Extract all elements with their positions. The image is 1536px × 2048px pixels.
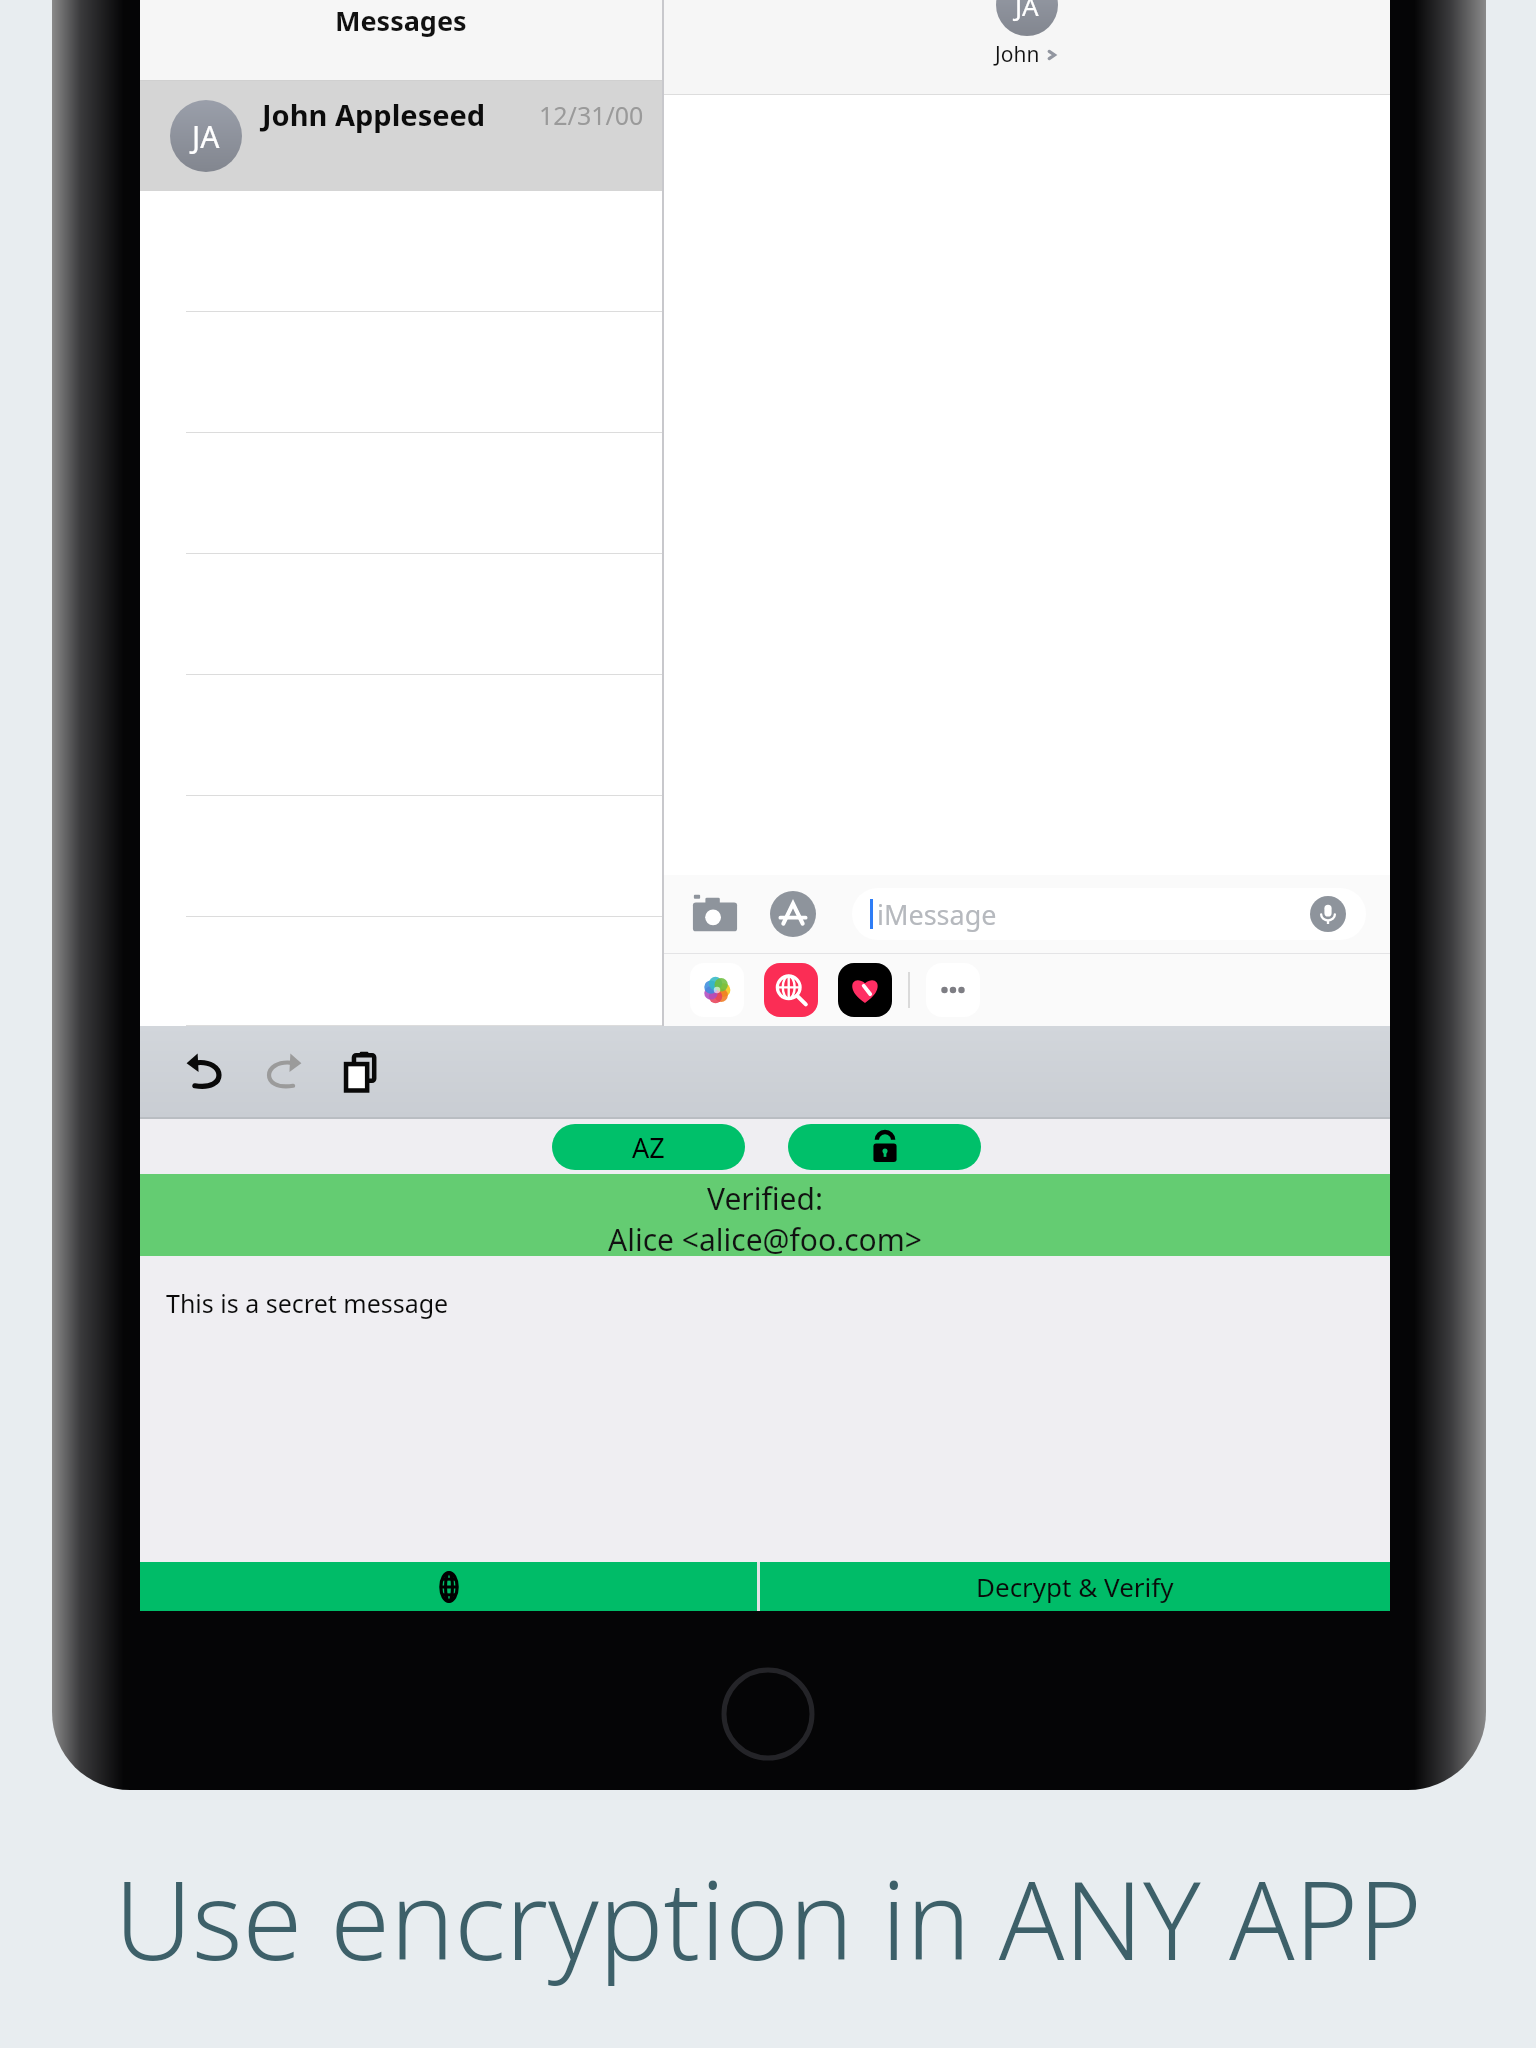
button[interactable]: Decrypt & Verify [760,1562,1390,1611]
staticText: JA [1015,0,1039,23]
button[interactable]: Redo [254,1043,312,1101]
button[interactable]: Paste [332,1043,390,1101]
staticText: 12/31/00 [539,98,644,132]
button[interactable]: Digital Touch [838,963,892,1017]
button[interactable]: Camera [688,887,742,941]
staticText: Alice <alice@foo.com> [608,1219,922,1256]
button[interactable]: JA [140,81,662,191]
button[interactable]: Photos [690,963,744,1017]
button[interactable]: Image search [764,963,818,1017]
staticText: AZ [632,1129,665,1166]
staticText: This is a secret message [166,1286,449,1320]
button[interactable]: Undo [176,1043,234,1101]
staticText: Use encryption in ANY APP [114,1845,1422,1992]
button[interactable]: Dictate [1308,894,1348,934]
button[interactable]: App Store [768,889,818,939]
staticText: JA [192,116,220,157]
button[interactable]: Encrypt [788,1124,981,1170]
button[interactable]: iMessage [852,888,1366,940]
staticText: Decrypt & Verify [976,1569,1174,1604]
button[interactable]: More apps [926,963,980,1017]
staticText: iMessage [877,896,997,933]
staticText: John [995,40,1040,69]
button[interactable]: JA [664,0,1390,94]
staticText: Messages [335,2,467,39]
staticText: John Appleseed [262,95,486,134]
button[interactable]: AZ [552,1124,745,1170]
staticText: Verified: [707,1178,823,1219]
button[interactable]: Globe / switch keyboard [140,1562,757,1611]
